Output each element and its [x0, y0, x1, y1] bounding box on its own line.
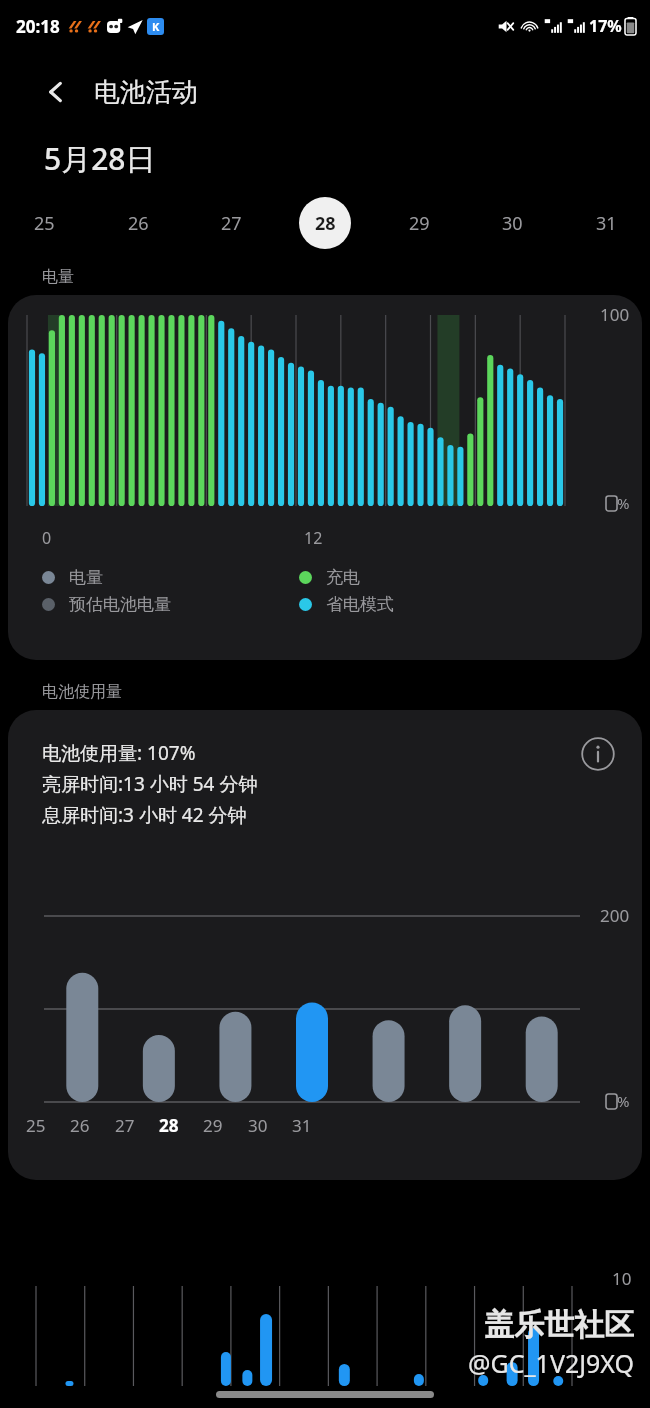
staticText: 预估电池电量 [69, 594, 171, 615]
button[interactable]: 100 [8, 295, 642, 660]
button[interactable]: 31 [580, 197, 632, 249]
button[interactable]: 25 [18, 197, 70, 249]
staticText: 5月28日 [44, 138, 156, 179]
staticText: 29 [409, 211, 430, 236]
staticText: 25 [34, 211, 55, 236]
staticText: 31 [596, 211, 617, 236]
staticText: 10 [612, 1267, 632, 1290]
staticText: 12 [304, 527, 323, 549]
staticText: @GC_1V2J9XQ [468, 1346, 634, 1380]
staticText: 电量 [42, 267, 74, 287]
staticText: K [152, 19, 160, 34]
staticText: 200 [600, 904, 630, 927]
button[interactable]: 30 [486, 197, 538, 249]
staticText: 28 [315, 211, 336, 236]
staticText: 29 [203, 1114, 223, 1137]
staticText: 亮屏时间:13 小时 54 分钟 [42, 771, 258, 797]
staticText: 电池使用量 [42, 682, 122, 702]
staticText: 盖乐世社区 [484, 1306, 634, 1344]
staticText: 31 [292, 1114, 312, 1137]
button[interactable]: 29 [393, 197, 445, 249]
button[interactable]: 电池使用量: 107% [8, 710, 642, 1180]
staticText: 0 [42, 527, 52, 549]
staticText: 充电 [326, 567, 360, 588]
button[interactable]: Back [34, 70, 78, 114]
staticText: 息屏时间:3 小时 42 分钟 [42, 802, 247, 828]
staticText: 30 [502, 211, 523, 236]
staticText: 25 [26, 1114, 46, 1137]
staticText: 30 [248, 1114, 268, 1137]
staticText: 电量 [69, 567, 103, 588]
staticText: % [617, 493, 630, 513]
staticText: 26 [70, 1114, 90, 1137]
button[interactable]: 28 [299, 197, 351, 249]
staticText: 27 [115, 1114, 135, 1137]
button[interactable]: 26 [112, 197, 164, 249]
staticText: 28 [159, 1114, 179, 1137]
staticText: 27 [221, 211, 242, 236]
button[interactable]: Info [580, 736, 616, 772]
staticText: 20:18 [16, 15, 60, 38]
staticText: 电池使用量: 107% [42, 740, 196, 766]
staticText: 17% [589, 15, 622, 37]
staticText: 电池活动 [94, 76, 198, 109]
staticText: % [617, 1091, 630, 1111]
staticText: 26 [128, 211, 149, 236]
button[interactable]: 27 [205, 197, 257, 249]
staticText: 100 [600, 303, 630, 326]
staticText: 省电模式 [326, 594, 394, 615]
